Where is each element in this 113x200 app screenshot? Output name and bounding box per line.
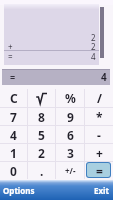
button[interactable]: . (28, 162, 55, 179)
staticText: 7 (10, 109, 17, 125)
button[interactable]: - (85, 126, 113, 143)
button[interactable]: % (56, 89, 84, 107)
button[interactable]: 5 (28, 126, 55, 143)
button[interactable]: 4 (0, 126, 27, 143)
staticText: - (97, 127, 101, 143)
button[interactable]: Exit (94, 185, 109, 196)
button[interactable]: 2 (28, 144, 55, 161)
staticText: = (8, 51, 13, 60)
button[interactable]: 0 (0, 162, 27, 179)
staticText: 4 (101, 70, 107, 84)
staticText: 9 (67, 109, 74, 125)
staticText: 4 (91, 51, 96, 60)
staticText: + (96, 145, 103, 161)
staticText: = (10, 71, 16, 83)
button[interactable]: 6 (56, 126, 84, 143)
staticText: 3 (67, 145, 74, 161)
button[interactable]: * (85, 108, 113, 125)
staticText: 6 (67, 127, 74, 143)
staticText: 4 (10, 127, 17, 143)
button[interactable]: 7 (0, 108, 27, 125)
button[interactable]: 3 (56, 144, 84, 161)
button[interactable]: +/- (56, 162, 84, 179)
staticText: 0 (10, 163, 17, 179)
button[interactable]: 1 (0, 144, 27, 161)
staticText: 2 (91, 41, 96, 50)
staticText: = (96, 163, 103, 179)
button[interactable]: 8 (28, 108, 55, 125)
staticText: 8 (38, 109, 45, 125)
button[interactable]: / (85, 89, 113, 107)
staticText: 2 (38, 145, 45, 161)
staticText: 5 (38, 127, 45, 143)
button[interactable]: 9 (56, 108, 84, 125)
button[interactable]: + (85, 144, 113, 161)
staticText: C (10, 90, 18, 106)
staticText: 1 (10, 145, 17, 161)
staticText: / (97, 90, 102, 106)
button[interactable]: C (0, 89, 27, 107)
button[interactable]: Options (3, 185, 35, 196)
staticText: +/- (65, 165, 76, 176)
staticText: . (40, 163, 44, 179)
staticText: 2 (91, 32, 96, 41)
staticText: * (96, 109, 103, 125)
button[interactable]: = (85, 162, 113, 179)
staticText: Exit (94, 185, 109, 196)
staticText: + (8, 41, 13, 50)
staticText: % (65, 90, 76, 106)
button[interactable] (28, 89, 55, 107)
staticText: Options (3, 185, 35, 196)
